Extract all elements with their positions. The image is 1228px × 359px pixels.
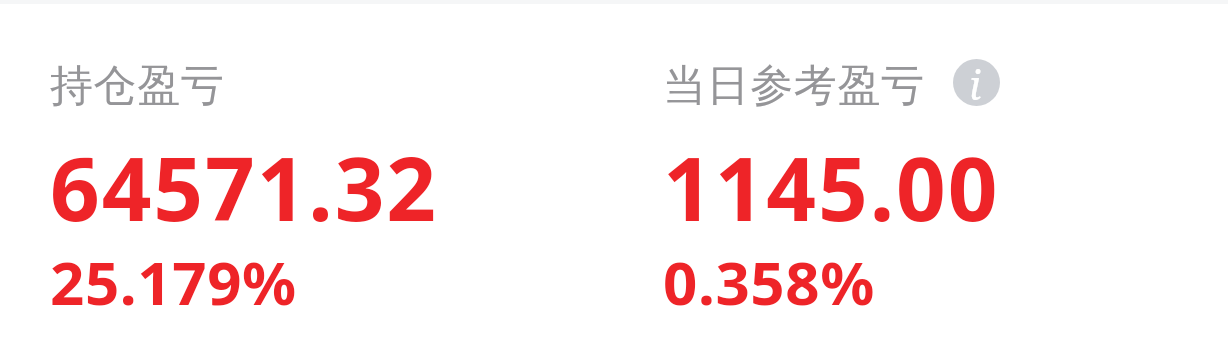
staticText: 0.358% <box>663 241 875 323</box>
staticText: i <box>969 59 982 104</box>
staticText: 64571.32 <box>50 128 438 246</box>
staticText: 当日参考盈亏 <box>663 59 925 113</box>
button[interactable] <box>663 52 1223 314</box>
staticText: 持仓盈亏 <box>50 59 225 113</box>
staticText: 25.179% <box>50 241 297 323</box>
staticText: 1145.00 <box>663 128 1000 246</box>
button[interactable] <box>50 52 610 314</box>
button[interactable]: About today's reference profit and loss <box>953 59 1000 106</box>
